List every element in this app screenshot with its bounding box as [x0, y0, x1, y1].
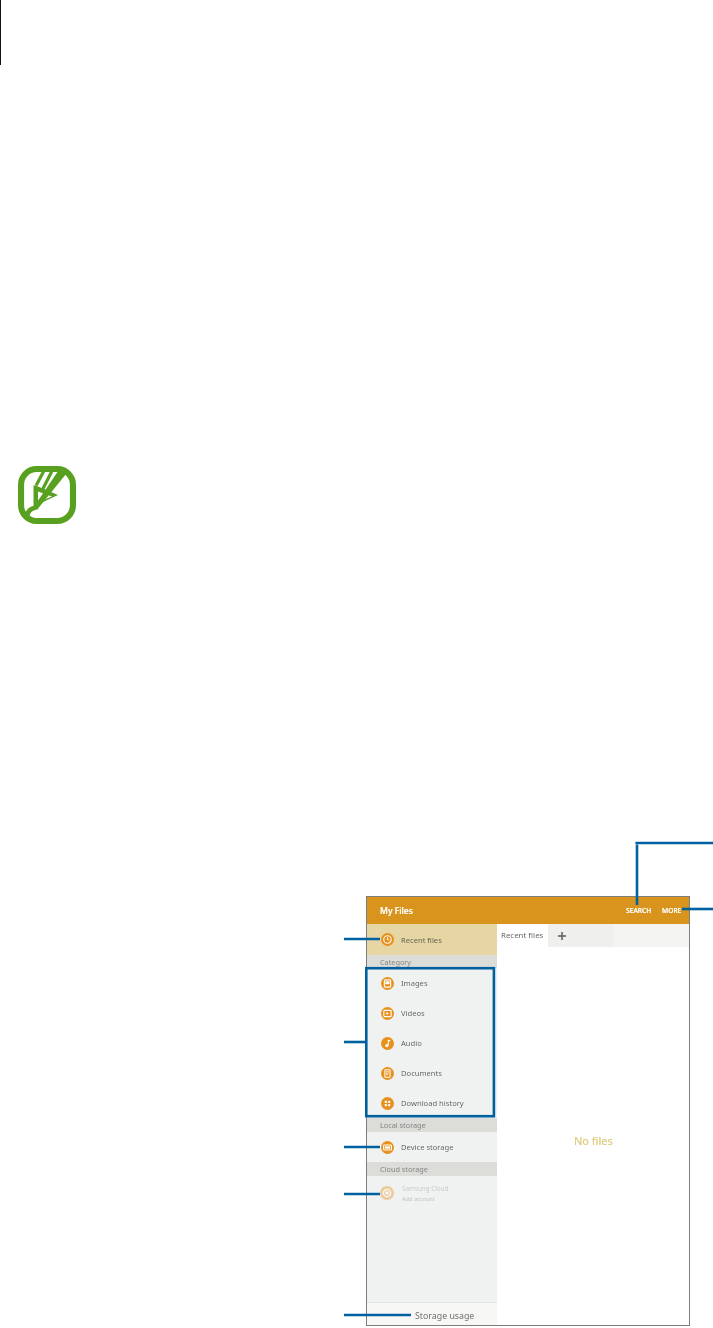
staticText: Videos	[401, 1008, 425, 1018]
staticText: Images	[401, 978, 428, 988]
button[interactable]: Storage usage	[367, 1303, 497, 1325]
button[interactable]: SEARCH	[621, 902, 657, 919]
staticText: Device storage	[401, 1142, 454, 1152]
button[interactable]: Images	[367, 968, 497, 998]
button[interactable]: Samsung Cloud	[367, 1176, 497, 1210]
staticText: MORE	[662, 906, 682, 915]
staticText: Audio	[401, 1038, 422, 1048]
staticText: SEARCH	[626, 906, 652, 915]
button[interactable]: Recent files	[367, 924, 497, 955]
button[interactable]: Videos	[367, 998, 497, 1028]
button[interactable]: Recent files	[497, 924, 548, 947]
staticText: Local storage	[380, 1120, 426, 1130]
staticText: My Files	[380, 905, 413, 917]
button[interactable]: Download history	[367, 1088, 497, 1118]
button[interactable]: Device storage	[367, 1132, 497, 1162]
staticText: Recent files	[401, 935, 442, 945]
staticText: Documents	[401, 1068, 442, 1078]
staticText: Storage usage	[415, 1310, 475, 1322]
staticText: Samsung Cloud	[402, 1184, 449, 1193]
staticText: Add account	[402, 1195, 435, 1203]
staticText: Category	[380, 957, 412, 967]
staticText: Recent files	[501, 930, 544, 941]
button[interactable]: Audio	[367, 1028, 497, 1058]
staticText: Download history	[401, 1098, 464, 1108]
staticText: Cloud storage	[380, 1164, 428, 1174]
button[interactable]: MORE	[657, 902, 687, 919]
button[interactable]: Add tab	[548, 924, 576, 947]
staticText: No files	[574, 1133, 613, 1148]
button[interactable]: Documents	[367, 1058, 497, 1088]
